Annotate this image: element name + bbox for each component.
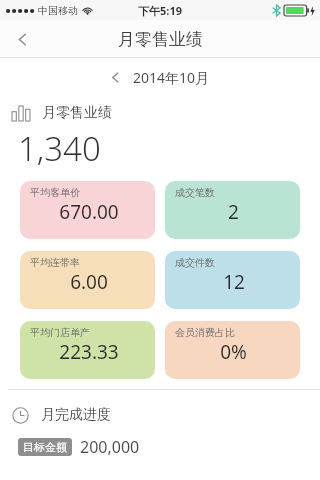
- button[interactable]: 会员消费占比: [165, 321, 300, 379]
- button[interactable]: 2014年10月: [100, 64, 220, 91]
- staticText: 月零售业绩: [118, 29, 203, 50]
- staticText: 会员消费占比: [175, 326, 235, 339]
- staticText: 2014年10月: [133, 68, 210, 87]
- button[interactable]: 平均连带率: [20, 251, 155, 309]
- staticText: 下午5:19: [138, 3, 182, 18]
- staticText: 670.00: [59, 199, 119, 225]
- button[interactable]: 成交笔数: [165, 181, 300, 239]
- button[interactable]: Back: [0, 20, 44, 58]
- staticText: 6.00: [70, 269, 108, 295]
- staticText: 成交笔数: [175, 186, 215, 199]
- staticText: 平均客单价: [30, 186, 80, 199]
- button[interactable]: 平均门店单产: [20, 321, 155, 379]
- staticText: 200,000: [80, 436, 140, 458]
- staticText: 0%: [220, 339, 247, 365]
- staticText: 223.33: [59, 339, 119, 365]
- staticText: 平均门店单产: [30, 326, 90, 339]
- staticText: 2: [228, 199, 239, 225]
- button[interactable]: 成交件数: [165, 251, 300, 309]
- staticText: 月零售业绩: [42, 104, 112, 122]
- staticText: 平均连带率: [30, 256, 80, 269]
- staticText: 目标金额: [23, 440, 67, 454]
- button[interactable]: 平均客单价: [20, 181, 155, 239]
- staticText: 成交件数: [175, 256, 215, 269]
- staticText: 月完成进度: [41, 406, 111, 424]
- staticText: 1,340: [18, 126, 101, 171]
- staticText: 12: [223, 269, 245, 295]
- staticText: 中国移动: [38, 4, 78, 17]
